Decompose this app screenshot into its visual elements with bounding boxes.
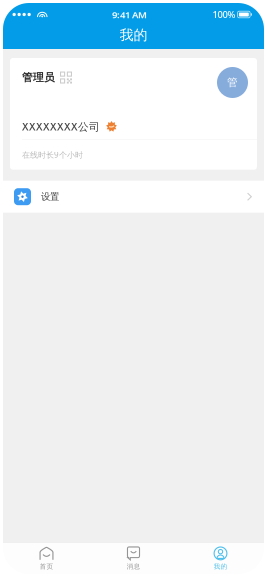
button[interactable]: 我的 bbox=[177, 543, 264, 573]
staticText: 我的 bbox=[213, 562, 227, 571]
staticText: 在线时长9个小时 bbox=[22, 149, 83, 160]
button[interactable]: 首页 bbox=[3, 543, 90, 573]
staticText: 设置 bbox=[41, 191, 59, 202]
button[interactable]: 设置 bbox=[3, 181, 264, 213]
staticText: 9:41 AM bbox=[112, 8, 147, 21]
staticText: 100% bbox=[212, 8, 235, 21]
staticText: XXXXXXXX公司 bbox=[22, 119, 100, 134]
staticText: 我的 bbox=[119, 26, 147, 44]
staticText: 消息 bbox=[126, 562, 140, 571]
staticText: 首页 bbox=[39, 562, 53, 571]
staticText: 管理员 bbox=[22, 71, 55, 84]
staticText: 管 bbox=[227, 76, 238, 89]
button[interactable]: 消息 bbox=[90, 543, 177, 573]
